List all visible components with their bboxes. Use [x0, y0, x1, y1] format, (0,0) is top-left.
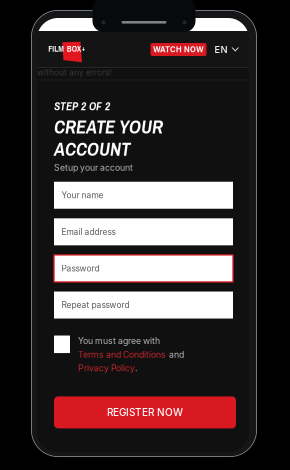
staticText: EN — [214, 44, 227, 55]
button[interactable]: Your name — [54, 182, 233, 209]
staticText: without any errors! — [37, 67, 111, 77]
button[interactable]: Email address — [54, 218, 233, 245]
staticText: WATCH NOW — [153, 45, 204, 54]
staticText: Your name — [61, 190, 103, 200]
staticText: Email address — [61, 227, 115, 237]
staticText: STEP 2 OF 2 — [54, 98, 110, 114]
staticText: and — [169, 349, 184, 360]
button[interactable]: Repeat password — [54, 292, 233, 319]
button[interactable]: EN — [206, 38, 249, 60]
button[interactable]: Privacy Policy — [78, 363, 135, 373]
staticText: REGISTER NOW — [107, 406, 183, 418]
staticText: FILM — [48, 43, 64, 54]
staticText: . — [135, 363, 137, 373]
button[interactable]: Terms and Conditions — [78, 349, 166, 360]
staticText: Privacy Policy — [78, 363, 135, 373]
button[interactable]: Password — [54, 255, 233, 282]
staticText: BOX — [67, 43, 82, 54]
staticText: You must agree with — [78, 336, 160, 346]
staticText: CREATE YOUR — [54, 114, 163, 139]
button[interactable]: FilmBox Plus home — [37, 36, 82, 62]
staticText: Setup your account — [54, 162, 133, 173]
staticText: + — [82, 44, 85, 53]
staticText: Password — [61, 263, 99, 274]
staticText: ACCOUNT — [54, 136, 130, 162]
staticText: Repeat password — [61, 300, 129, 310]
button[interactable]: WATCH NOW — [150, 43, 206, 56]
button[interactable]: REGISTER NOW — [54, 396, 236, 428]
staticText: Terms and Conditions — [78, 349, 166, 360]
